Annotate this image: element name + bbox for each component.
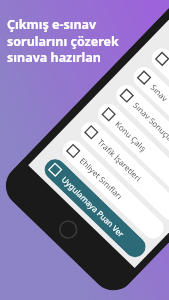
button[interactable]: Home [55, 216, 82, 243]
button[interactable]: Sınav [129, 63, 169, 170]
button[interactable]: Ehliyet Sınıfları [58, 136, 168, 243]
staticText: Sınav [148, 82, 169, 103]
staticText: Uygulamaya Puan Ver [60, 174, 127, 239]
button[interactable]: Trafik İşaretleri [76, 117, 169, 224]
button[interactable]: Uygulamaya Puan Ver [40, 155, 150, 262]
button[interactable]: Sınav Sonuçları [112, 81, 169, 187]
staticText: Ehliyet Sınıfları [78, 155, 126, 202]
button[interactable]: Konu Çalış [94, 99, 169, 206]
staticText: Konu Çalış [113, 118, 149, 154]
staticText: Trafik İşaretleri [96, 136, 144, 184]
button[interactable] [147, 44, 169, 151]
staticText: Çıkmış e-sınav sorularını çözerek sınava… [7, 16, 119, 65]
staticText: Sınav Sonuçları [131, 100, 169, 147]
